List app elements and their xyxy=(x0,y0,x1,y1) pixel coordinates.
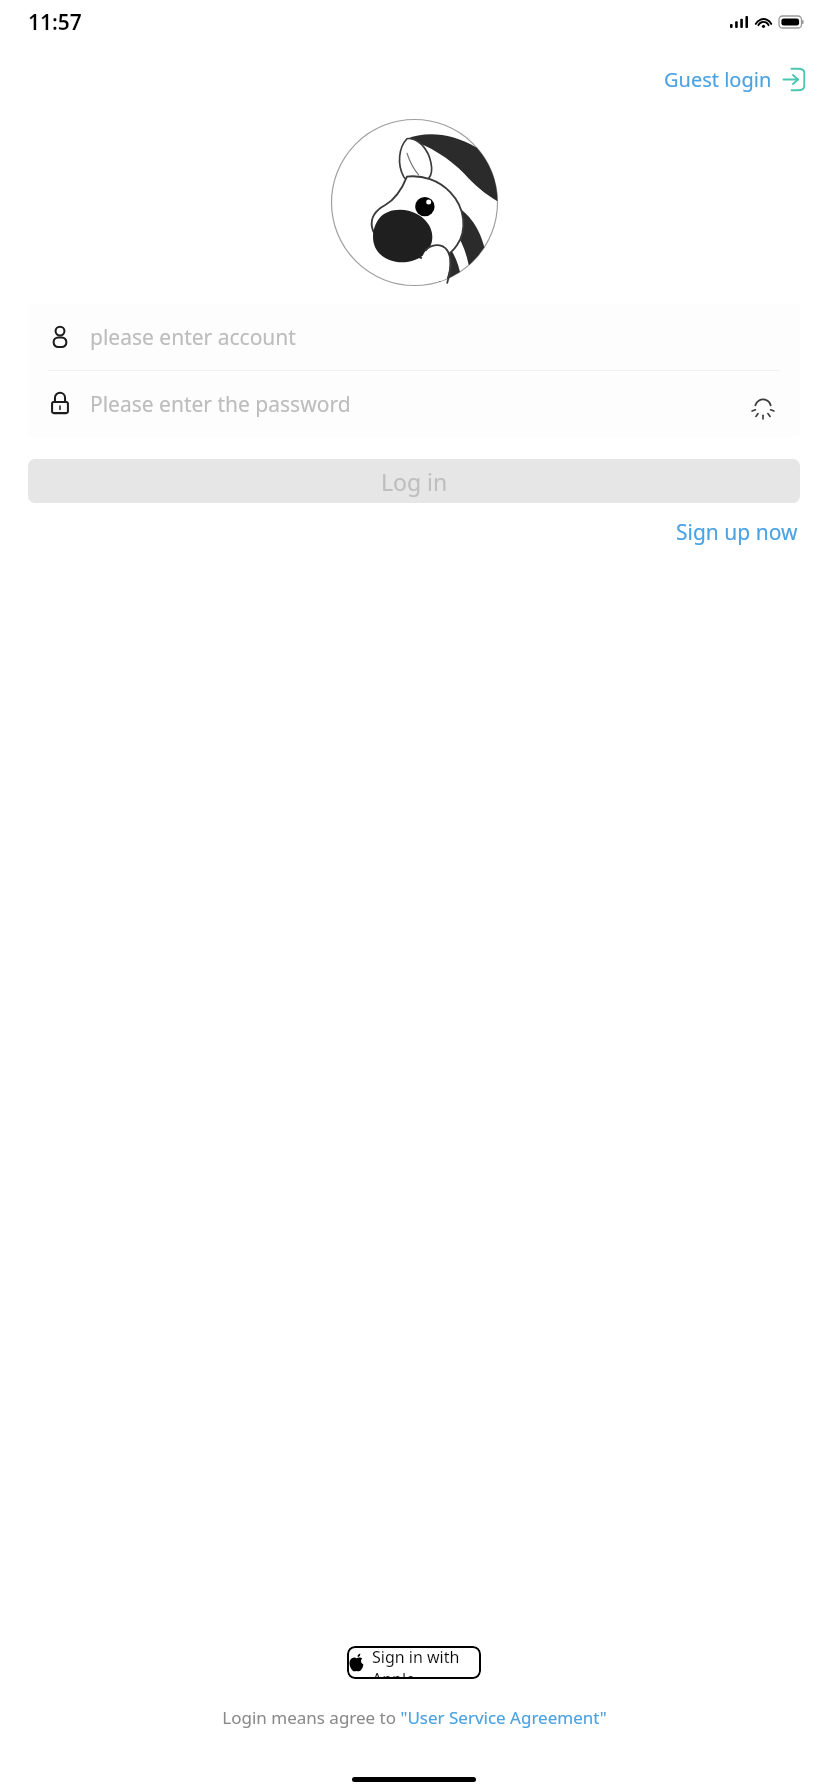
staticText: 11:57 xyxy=(28,8,82,37)
button[interactable]: Sign up now xyxy=(674,515,800,550)
other: App logo xyxy=(331,119,498,286)
button[interactable]: please enter account xyxy=(28,304,800,370)
button[interactable]: Guest login xyxy=(660,62,810,97)
button[interactable]: Sign in with Apple xyxy=(347,1646,481,1679)
button[interactable]: Please enter the password xyxy=(28,371,800,437)
staticText: Sign in with Apple xyxy=(372,1646,481,1679)
staticText: please enter account xyxy=(90,323,296,352)
button[interactable]: Show password xyxy=(746,387,780,421)
button[interactable]: Log in xyxy=(28,459,800,503)
other: Guest login xyxy=(781,67,806,92)
staticText: Please enter the password xyxy=(90,390,746,419)
staticText: Login means agree to "User Service Agree… xyxy=(222,1706,607,1729)
staticText: Log in xyxy=(381,466,448,497)
staticText: Sign up now xyxy=(676,518,798,547)
staticText: Guest login xyxy=(664,66,772,93)
button[interactable]: Login means agree to "User Service Agree… xyxy=(0,1706,828,1729)
